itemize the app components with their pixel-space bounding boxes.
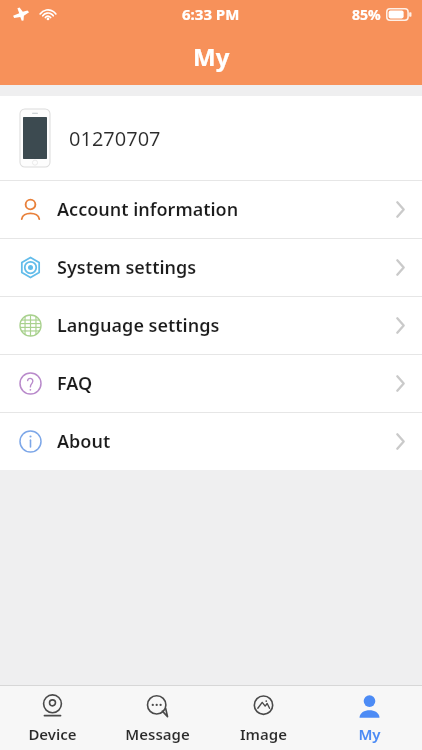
staticText: 6:33 PM — [182, 4, 240, 24]
button[interactable]: Message — [105, 686, 210, 750]
button[interactable]: Language settings — [0, 297, 422, 354]
staticText: 01270707 — [69, 125, 161, 152]
staticText: FAQ — [57, 371, 93, 396]
button[interactable]: 01270707 — [0, 96, 422, 180]
button[interactable]: Account information — [0, 181, 422, 238]
staticText: 85% — [352, 5, 381, 24]
staticText: About — [57, 429, 111, 454]
staticText: My — [193, 40, 230, 73]
staticText: Language settings — [57, 313, 220, 338]
staticText: Account information — [57, 197, 239, 222]
staticText: Image — [240, 724, 287, 744]
button[interactable]: Device — [0, 686, 105, 750]
button[interactable]: Image — [210, 686, 316, 750]
staticText: My — [358, 724, 381, 744]
button[interactable]: My — [316, 686, 422, 750]
button[interactable]: System settings — [0, 239, 422, 296]
button[interactable]: About — [0, 413, 422, 470]
button[interactable]: FAQ — [0, 355, 422, 412]
staticText: Device — [28, 724, 77, 744]
staticText: Message — [125, 724, 190, 744]
staticText: System settings — [57, 255, 197, 280]
